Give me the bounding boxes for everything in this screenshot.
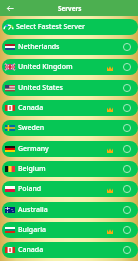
button[interactable]: United Kingdom — [2, 59, 138, 75]
button[interactable]: Australia — [2, 202, 138, 218]
staticText: Canada — [18, 245, 44, 255]
staticText: United States — [18, 83, 63, 93]
staticText: Netherlands — [18, 42, 60, 52]
button[interactable]: Netherlands — [2, 39, 138, 55]
button[interactable]: Belgium — [2, 161, 138, 177]
button[interactable]: Select Fastest Server — [2, 19, 138, 35]
staticText: Canada — [18, 103, 44, 113]
button[interactable]: Sweden — [2, 120, 138, 136]
staticText: Poland — [18, 184, 42, 194]
button[interactable]: Germany — [2, 141, 138, 157]
staticText: Belgium — [18, 164, 46, 174]
button[interactable]: United States — [2, 80, 138, 96]
staticText: Sweden — [18, 123, 45, 133]
staticText: Servers — [58, 4, 82, 13]
button[interactable]: Bulgaria — [2, 222, 138, 238]
button[interactable]: Poland — [2, 181, 138, 197]
button[interactable]: Canada — [2, 242, 138, 258]
staticText: Bulgaria — [18, 225, 47, 235]
staticText: Select Fastest Server — [16, 22, 85, 32]
staticText: Australia — [18, 205, 48, 215]
button[interactable]: Back — [5, 3, 16, 14]
button[interactable]: Canada — [2, 100, 138, 116]
staticText: Germany — [18, 144, 49, 154]
staticText: United Kingdom — [18, 62, 73, 72]
